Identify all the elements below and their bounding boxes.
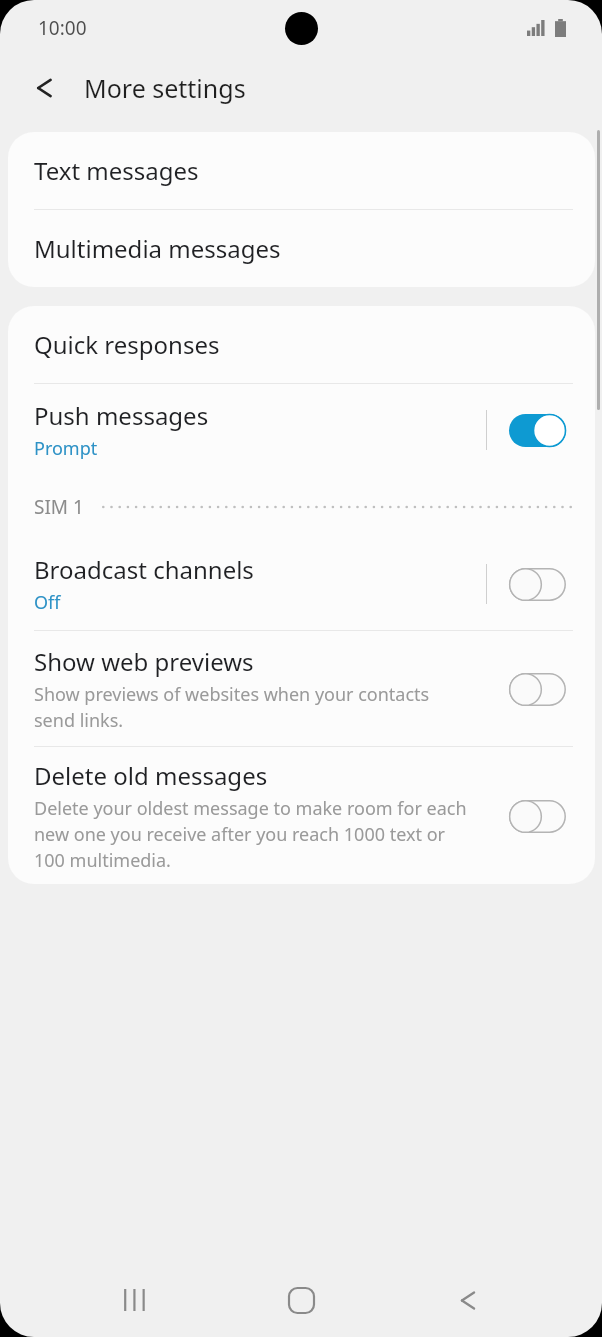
staticText: Delete old messages	[34, 759, 268, 792]
button[interactable]: Multimedia messages	[8, 210, 595, 287]
staticText: Quick responses	[34, 328, 220, 361]
staticText: Text messages	[34, 154, 199, 187]
staticText: Multimedia messages	[34, 232, 281, 265]
button[interactable]: Broadcast channels	[505, 559, 569, 609]
staticText: Broadcast channels	[34, 553, 254, 586]
staticText: 10:00	[38, 15, 87, 41]
button[interactable]: Delete old messages	[8, 747, 595, 884]
button[interactable]: Delete old messages	[505, 791, 569, 841]
staticText: Push messages	[34, 399, 209, 432]
staticText: Prompt	[34, 436, 98, 461]
button[interactable]: Push messages	[8, 384, 595, 476]
staticText: More settings	[84, 71, 246, 105]
button[interactable]: Broadcast channels	[8, 538, 595, 630]
staticText: Delete your oldest message to make room …	[34, 796, 467, 873]
button[interactable]: Quick responses	[8, 306, 595, 383]
button[interactable]: Text messages	[8, 132, 595, 209]
staticText: SIM 1	[34, 494, 84, 520]
button[interactable]: Show web previews	[8, 631, 595, 746]
button[interactable]: Home	[269, 1268, 333, 1332]
button[interactable]: Back	[436, 1268, 500, 1332]
staticText: Show previews of websites when your cont…	[34, 682, 430, 733]
button[interactable]: Show web previews	[505, 664, 569, 714]
button[interactable]: Back	[22, 65, 68, 111]
button[interactable]: Recent apps	[103, 1268, 167, 1332]
staticText: Show web previews	[34, 645, 254, 678]
button[interactable]: Push messages	[505, 405, 569, 455]
staticText: Off	[34, 590, 61, 615]
